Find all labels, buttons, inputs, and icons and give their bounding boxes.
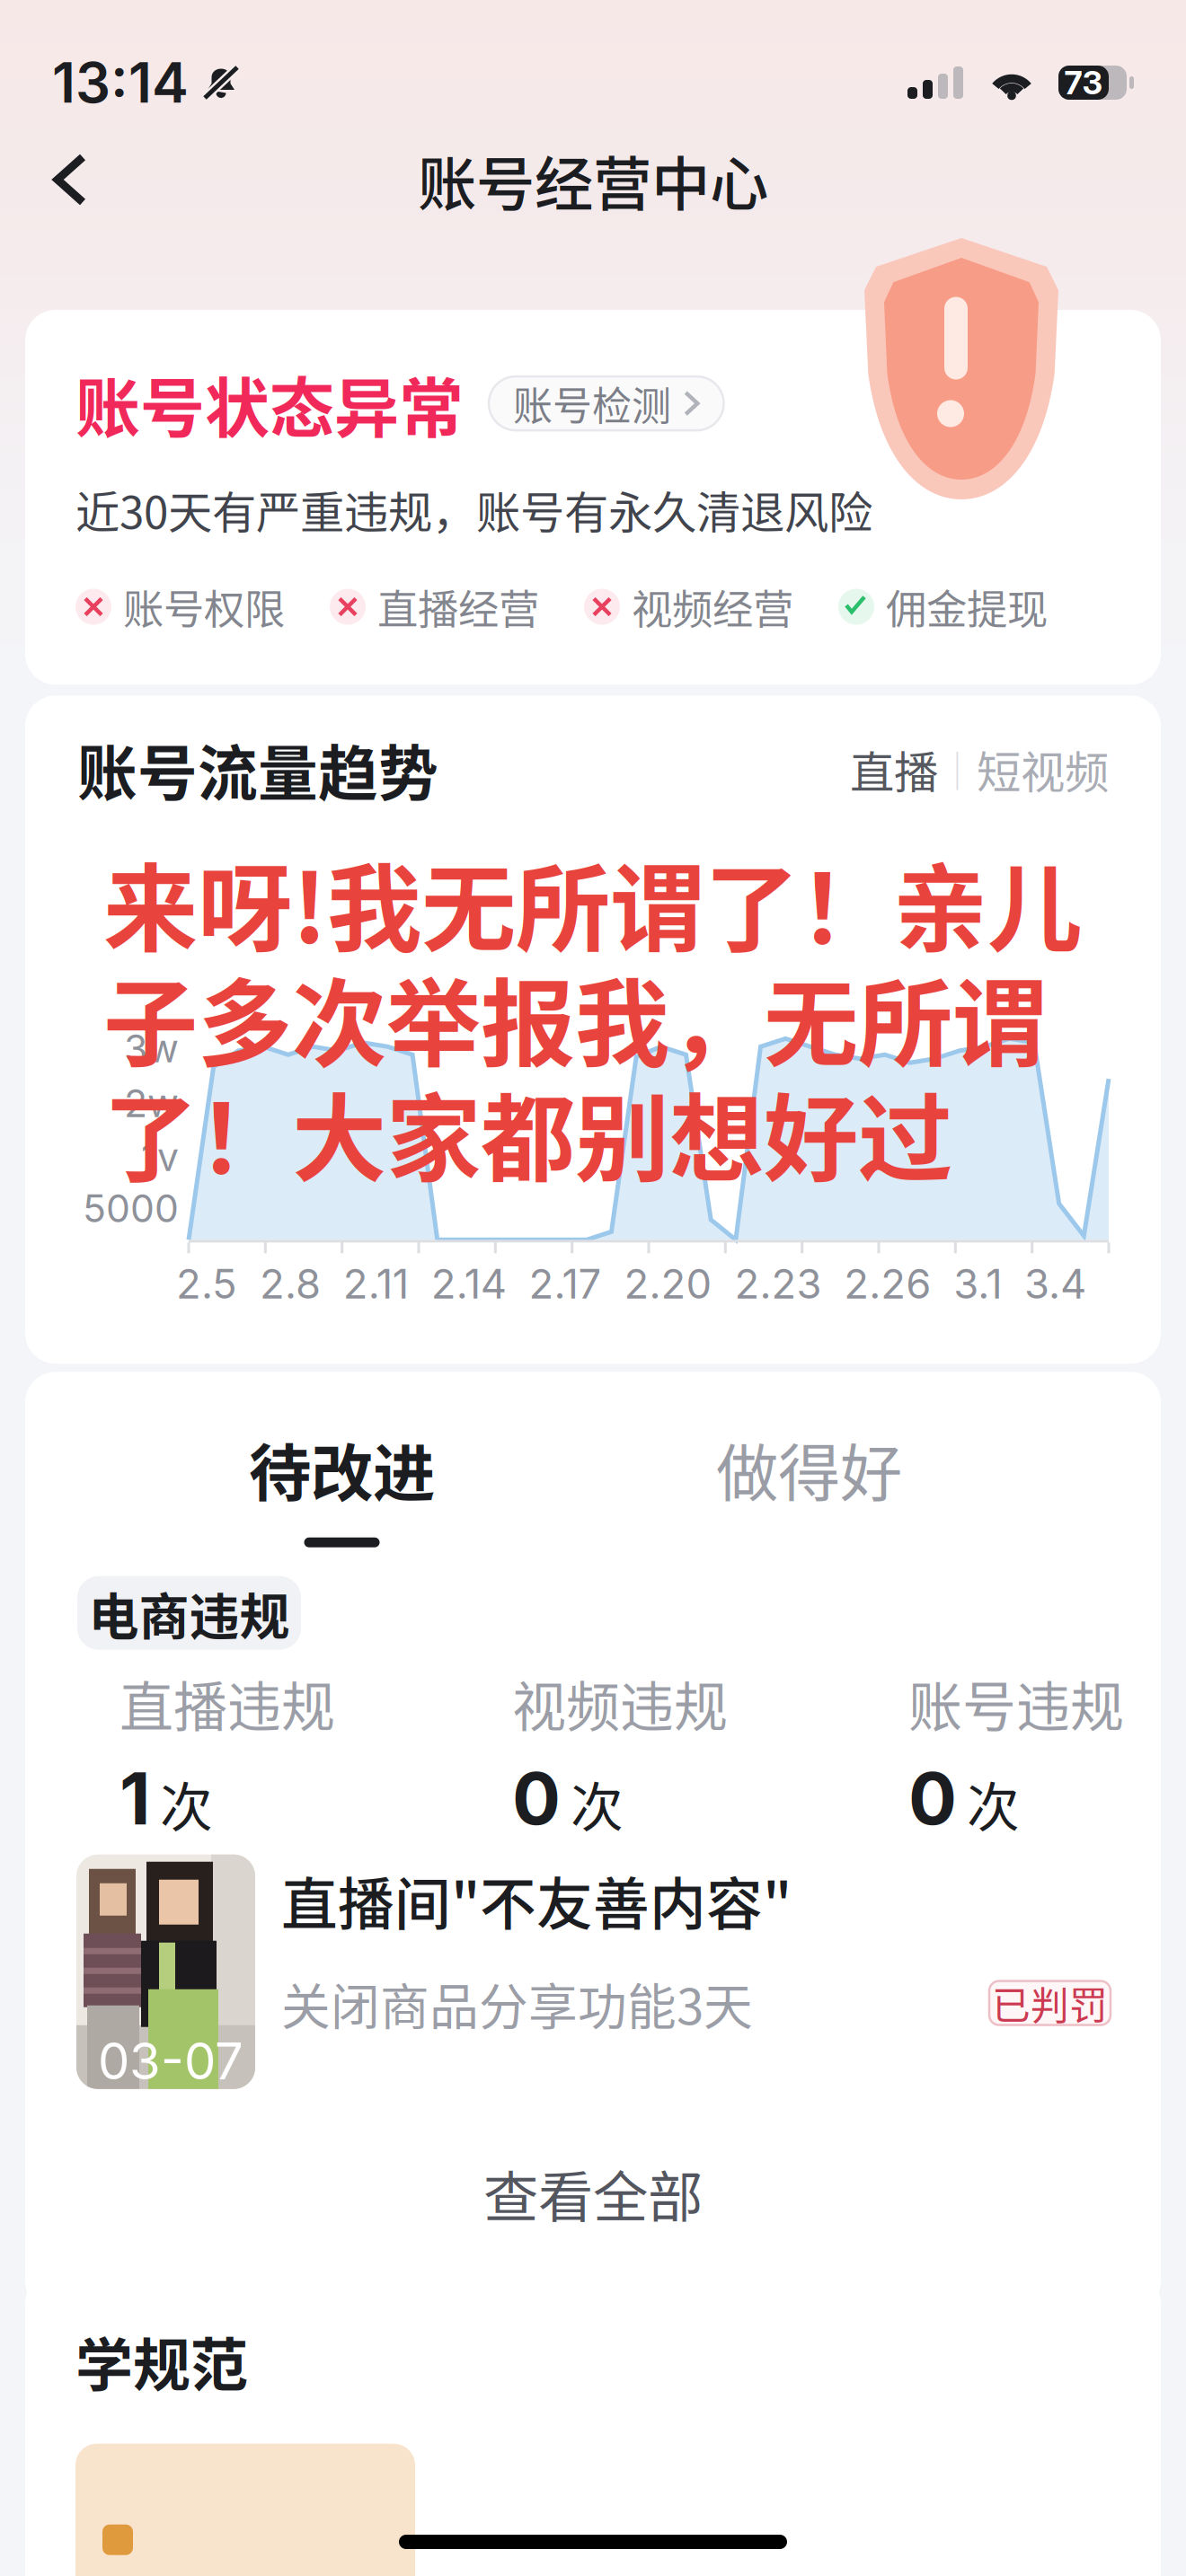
staticText: 13:14 bbox=[52, 49, 189, 116]
staticText: 了！大家都别想好过 bbox=[103, 1063, 952, 1200]
staticText: 近30天有严重违规，账号有永久清退风险 bbox=[75, 477, 872, 541]
button[interactable]: 短视频 bbox=[977, 737, 1109, 801]
staticText: 视频经营 bbox=[632, 577, 793, 636]
staticText: 来呀!我无所谓了！亲儿 bbox=[103, 834, 1082, 970]
staticText: 次 bbox=[571, 1765, 624, 1842]
staticText: 佣金提现 bbox=[886, 577, 1048, 636]
staticText: 短视频 bbox=[977, 737, 1109, 801]
staticText: 03-07 bbox=[98, 2031, 243, 2091]
staticText: 账号状态异常 bbox=[75, 357, 464, 450]
staticText: 2.26 bbox=[844, 1259, 931, 1308]
button[interactable]: 03-07 bbox=[25, 1854, 1161, 2089]
staticText: ｜ bbox=[938, 741, 977, 797]
staticText: 3.4 bbox=[1024, 1259, 1086, 1308]
staticText: 直播经营 bbox=[377, 577, 539, 636]
staticText: 做得好 bbox=[716, 1424, 902, 1514]
staticText: 账号违规 bbox=[908, 1664, 1124, 1742]
staticText: 关闭商品分享功能3天 bbox=[281, 1967, 753, 2039]
staticText: 次 bbox=[160, 1765, 213, 1842]
staticText: 2.8 bbox=[260, 1259, 321, 1308]
staticText: 待改进 bbox=[249, 1424, 435, 1514]
staticText: 视频违规 bbox=[512, 1664, 728, 1742]
staticText: 2.17 bbox=[529, 1259, 602, 1308]
staticText: 3w bbox=[124, 1025, 179, 1072]
staticText: 已判罚 bbox=[992, 1975, 1108, 2031]
staticText: 账号流量趋势 bbox=[77, 726, 438, 812]
staticText: 2.14 bbox=[431, 1259, 506, 1308]
staticText: 子多次举报我，无所谓 bbox=[103, 948, 1047, 1085]
button[interactable]: 直播 bbox=[850, 737, 938, 801]
staticText: 查看全部 bbox=[483, 2154, 703, 2233]
staticText: 2.5 bbox=[176, 1259, 237, 1308]
staticText: 73 bbox=[1064, 63, 1103, 102]
staticText: 0 bbox=[512, 1755, 561, 1842]
button[interactable]: 做得好 bbox=[735, 1424, 883, 1547]
staticText: 2.20 bbox=[624, 1259, 712, 1308]
button[interactable]: 电商违规 bbox=[77, 1576, 301, 1650]
button[interactable]: 账号检测 bbox=[489, 376, 724, 430]
staticText: 5000 bbox=[83, 1185, 179, 1232]
staticText: 账号权限 bbox=[123, 577, 285, 636]
staticText: 账号检测 bbox=[513, 375, 671, 432]
button[interactable]: 待改进 bbox=[268, 1424, 416, 1547]
staticText: 直播间"不友善内容" bbox=[281, 1859, 792, 1940]
staticText: 学规范 bbox=[75, 2319, 248, 2402]
staticText: 1v bbox=[141, 1134, 179, 1180]
staticText: 直播违规 bbox=[119, 1664, 335, 1742]
staticText: 2.11 bbox=[343, 1259, 409, 1308]
staticText: 电商违规 bbox=[89, 1576, 290, 1649]
staticText: 2w bbox=[124, 1080, 179, 1126]
staticText: 3.1 bbox=[953, 1259, 1002, 1308]
button[interactable]: 查看全部 bbox=[25, 2141, 1161, 2246]
staticText: 账号经营中心 bbox=[418, 137, 768, 222]
staticText: 直播 bbox=[850, 737, 938, 801]
button[interactable]: 返回 bbox=[25, 137, 115, 223]
staticText: 0 bbox=[908, 1755, 957, 1842]
staticText: 次 bbox=[967, 1765, 1020, 1842]
staticText: 1 bbox=[119, 1755, 150, 1842]
staticText: 2.23 bbox=[734, 1259, 822, 1308]
